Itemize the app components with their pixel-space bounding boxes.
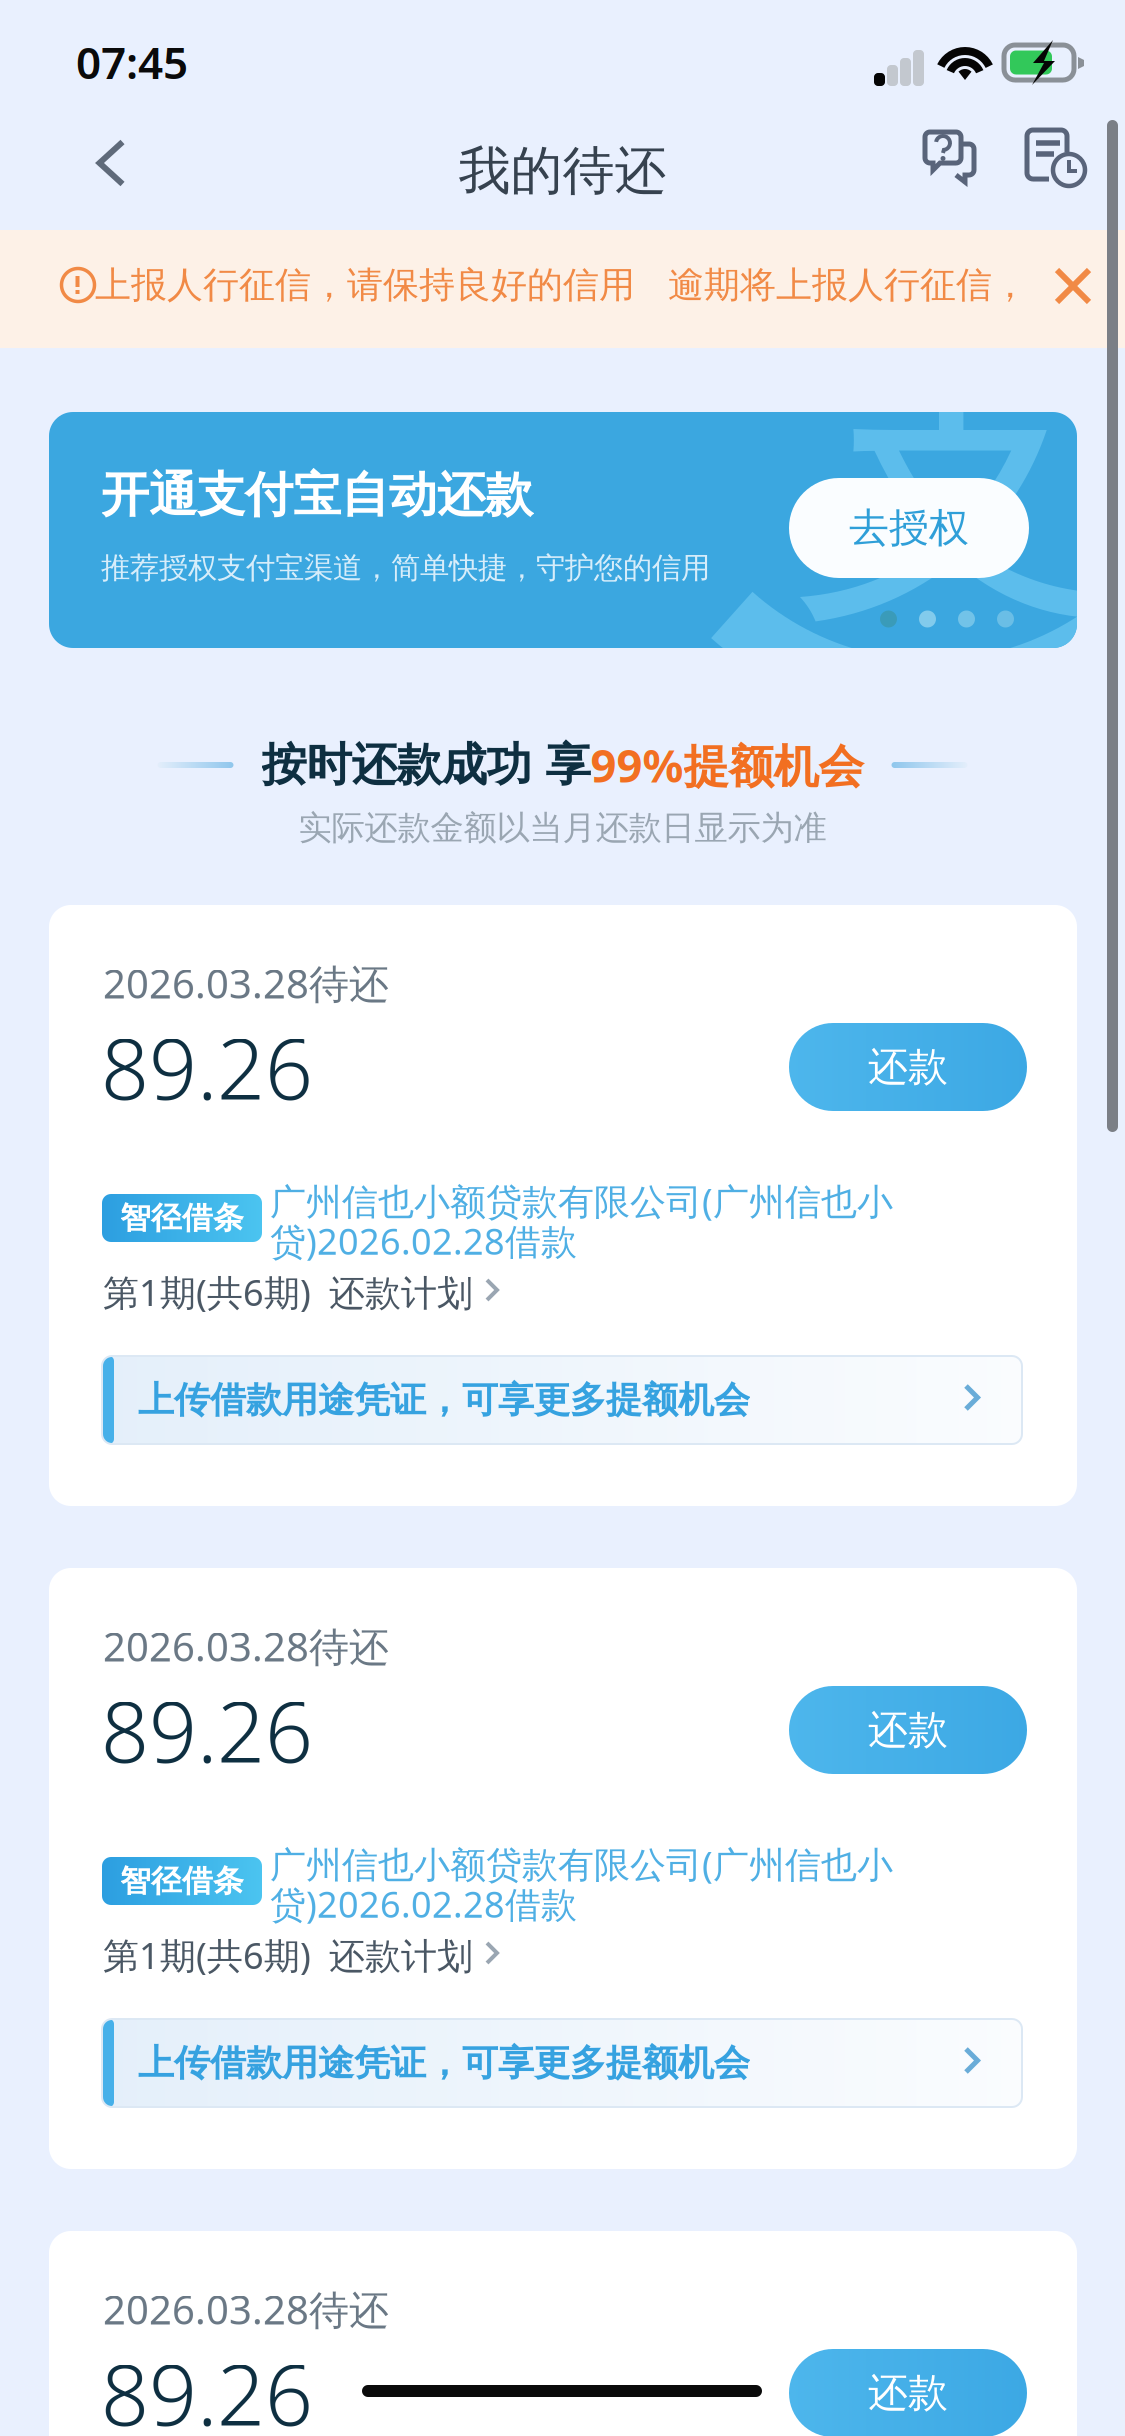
button[interactable]: 支 xyxy=(49,412,1077,648)
staticText: 上报人行征信，请保持良好的信用 逾期将上报人行征信， xyxy=(95,263,1028,307)
staticText: 第1期(共6期) 还款计划 xyxy=(103,1268,473,1316)
staticText: 2026.03.28待还 xyxy=(103,2282,389,2335)
staticText: 上传借款用途凭证，可享更多提额机会 xyxy=(138,2041,750,2085)
button[interactable]: 上传借款用途凭证，可享更多提额机会 xyxy=(102,1356,1022,1444)
staticText: 实际还款金额以当月还款日显示为准 xyxy=(298,807,826,848)
staticText: 广州信也小额贷款有限公司(广州信也小 xyxy=(270,1177,893,1225)
staticText: 还款 xyxy=(868,1042,948,1091)
staticText: 89.26 xyxy=(101,1674,313,1786)
staticText: 支 xyxy=(792,267,1125,677)
button[interactable]: 返回 xyxy=(56,104,166,222)
button[interactable]: 上传借款用途凭证，可享更多提额机会 xyxy=(102,2019,1022,2107)
staticText: 按时还款成功 享 xyxy=(261,737,590,793)
button[interactable]: 还款记录 xyxy=(1008,102,1112,220)
button[interactable]: 还款 xyxy=(789,2349,1027,2436)
staticText: 99%提额机会 xyxy=(590,735,863,795)
button[interactable]: 关闭提示 xyxy=(1033,227,1113,345)
staticText: 第1期(共6期) 还款计划 xyxy=(103,1931,473,1979)
staticText: 89.26 xyxy=(101,2337,313,2436)
staticText: 我的待还 xyxy=(458,139,666,203)
staticText: 贷)2026.02.28借款 xyxy=(270,1880,577,1928)
staticText: 07:45 xyxy=(76,33,188,91)
staticText: 智径借条 xyxy=(120,1199,244,1237)
button[interactable]: 还款 xyxy=(789,1686,1027,1774)
staticText: 上传借款用途凭证，可享更多提额机会 xyxy=(138,1378,750,1422)
staticText: 89.26 xyxy=(101,1011,313,1123)
staticText: 还款 xyxy=(868,2368,948,2417)
staticText: 智径借条 xyxy=(120,1862,244,1900)
button[interactable]: 还款 xyxy=(789,1023,1027,1111)
button[interactable]: 帮助中心 xyxy=(904,104,1008,222)
staticText: 2026.03.28待还 xyxy=(103,1619,389,1672)
staticText: 开通支付宝自动还款 xyxy=(101,465,533,524)
staticText: 推荐授权支付宝渠道，简单快捷，守护您的信用 xyxy=(101,550,710,586)
staticText: 贷)2026.02.28借款 xyxy=(270,1217,577,1265)
staticText: 还款 xyxy=(868,1705,948,1754)
staticText: 去授权 xyxy=(849,503,969,552)
staticText: 2026.03.28待还 xyxy=(103,956,389,1009)
staticText: 广州信也小额贷款有限公司(广州信也小 xyxy=(270,1840,893,1888)
